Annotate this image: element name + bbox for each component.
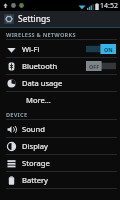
button[interactable]: Sound xyxy=(0,121,120,137)
staticText: Sound xyxy=(22,124,45,134)
staticText: Data usage xyxy=(22,78,63,88)
staticText: Settings xyxy=(18,13,51,25)
staticText: Wi-Fi xyxy=(22,44,40,54)
staticText: OFF xyxy=(89,63,100,70)
staticText: DEVICE xyxy=(6,111,28,119)
button[interactable]: Storage xyxy=(0,155,120,171)
button[interactable]: More... xyxy=(0,92,120,108)
button[interactable]: Battery xyxy=(0,172,120,188)
staticText: More... xyxy=(26,95,51,105)
staticText: WIRELESS & NETWORKS xyxy=(6,31,76,39)
button[interactable]: Wi-Fi xyxy=(0,41,120,57)
button[interactable]: Data usage xyxy=(0,75,120,91)
staticText: Display xyxy=(22,141,48,151)
staticText: ON xyxy=(104,46,113,53)
button[interactable]: Bluetooth xyxy=(0,58,120,74)
button[interactable]: Switch on xyxy=(86,44,116,54)
staticText: 14:52 xyxy=(100,1,118,11)
staticText: Bluetooth xyxy=(22,61,58,71)
button[interactable]: Switch off xyxy=(86,61,116,71)
button[interactable]: Settings xyxy=(0,11,120,27)
staticText: Storage xyxy=(22,158,50,168)
staticText: Battery xyxy=(22,175,48,185)
button[interactable]: Display xyxy=(0,138,120,154)
